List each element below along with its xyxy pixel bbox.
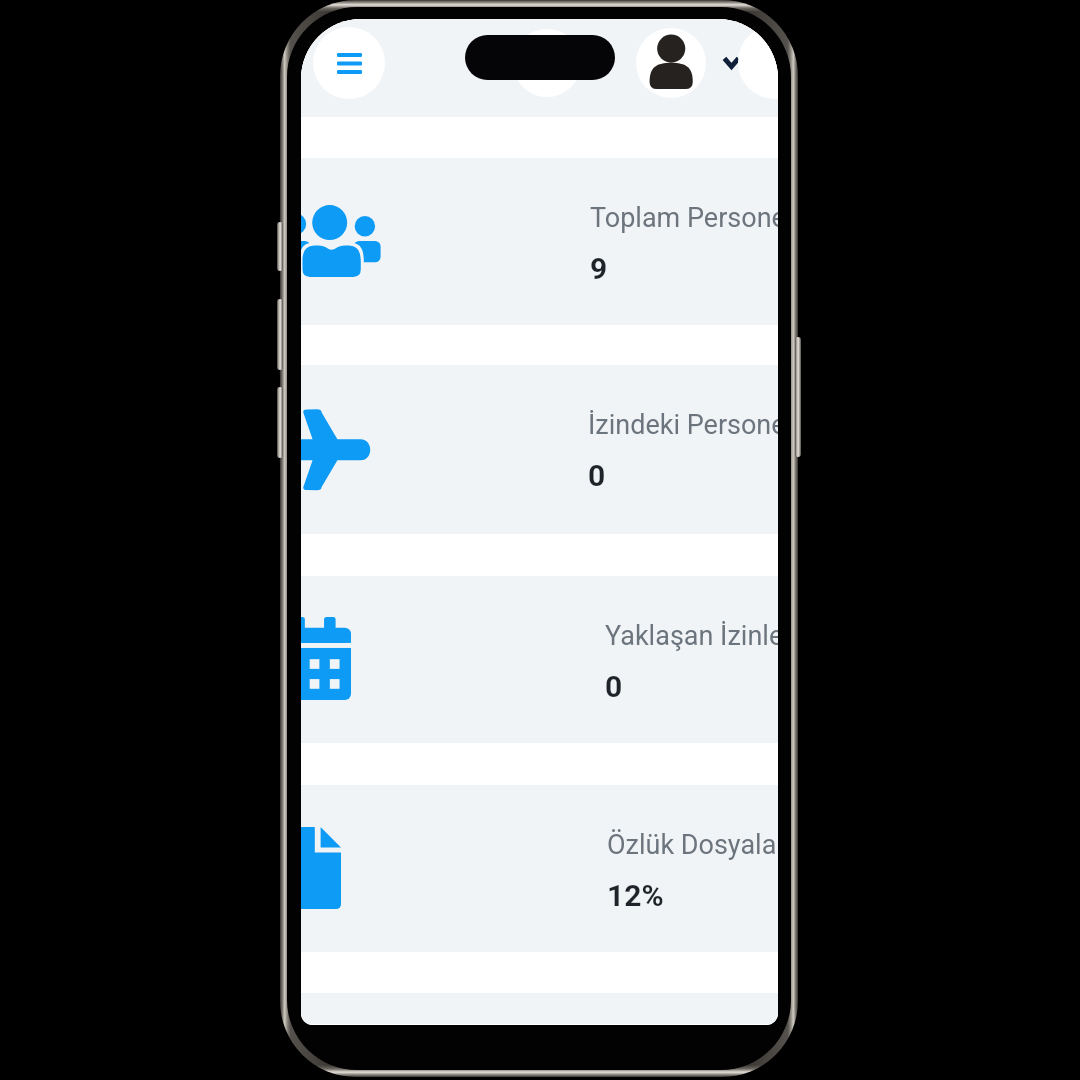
button[interactable]: Özlük Dosyaları [301, 785, 778, 952]
staticText: 0 [605, 669, 623, 704]
staticText: 12% [607, 878, 664, 913]
staticText: 0 [588, 458, 606, 493]
staticText: İzindeki Personel [588, 409, 778, 441]
button[interactable]: Account menu [713, 47, 749, 77]
button[interactable]: Toplam Personel [301, 158, 778, 325]
staticText: Yaklaşan İzinler [605, 620, 778, 652]
button[interactable]: Menu [313, 27, 385, 99]
staticText: Toplam Personel [590, 202, 778, 234]
button[interactable]: İzindeki Personel [301, 365, 778, 534]
staticText: 9 [590, 251, 608, 286]
staticText: Özlük Dosyaları [607, 829, 778, 861]
button[interactable]: Profile [636, 28, 706, 98]
button[interactable]: Yaklaşan İzinler [301, 576, 778, 743]
